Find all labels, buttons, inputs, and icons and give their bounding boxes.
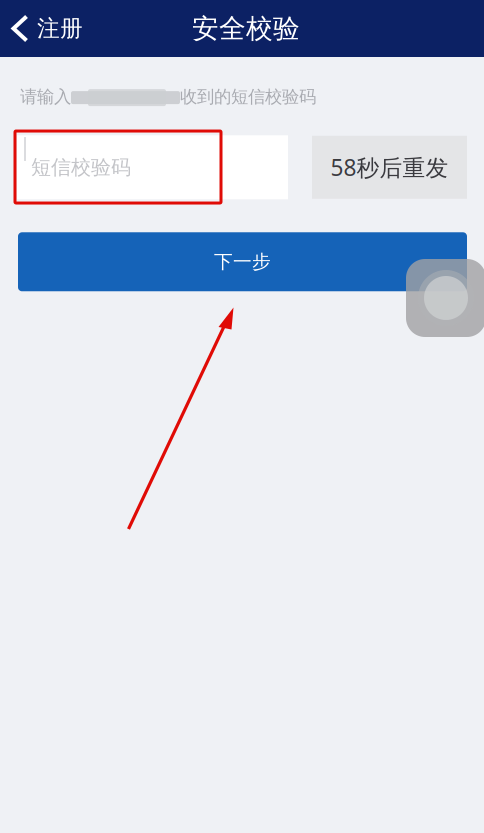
button[interactable]: 下一步 <box>18 232 467 291</box>
staticText: 请输入 <box>20 86 71 107</box>
button[interactable]: 58秒后重发 <box>312 136 467 199</box>
button[interactable]: 返回注册 <box>0 0 93 57</box>
button[interactable]: 短信校验码 <box>17 135 288 199</box>
staticText: 收到的短信校验码 <box>180 86 316 107</box>
staticText: 安全校验 <box>192 12 300 45</box>
staticText: 短信校验码 <box>31 155 131 180</box>
staticText: 58秒后重发 <box>330 152 448 182</box>
staticText: 下一步 <box>214 250 271 273</box>
staticText: 注册 <box>37 15 83 42</box>
